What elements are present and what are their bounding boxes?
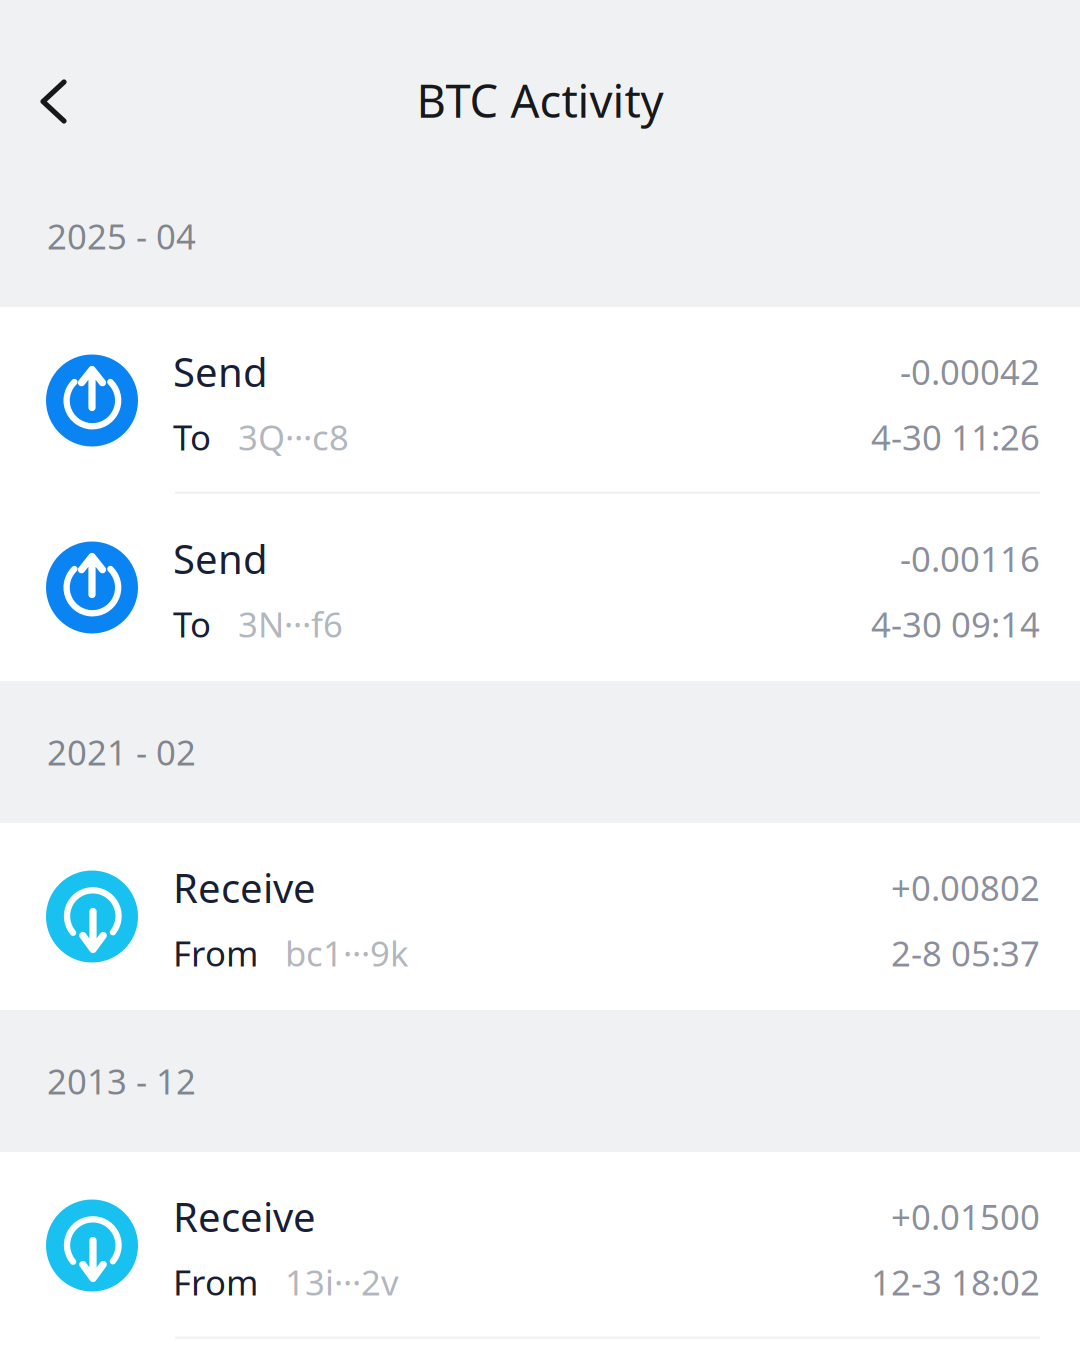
- staticText: +0.00802: [891, 864, 1040, 910]
- button[interactable]: Receive: [0, 823, 1080, 1010]
- staticText: 2025 - 04: [47, 213, 196, 259]
- button[interactable]: Send: [0, 494, 1080, 681]
- button[interactable]: Back: [18, 64, 106, 138]
- staticText: -0.00042: [900, 348, 1040, 394]
- staticText: To: [173, 414, 211, 460]
- button[interactable]: Send: [0, 307, 1080, 494]
- staticText: 3N···f6: [238, 601, 343, 647]
- button[interactable]: Receive: [0, 1152, 1080, 1339]
- staticText: BTC Activity: [416, 70, 663, 130]
- staticText: -0.00116: [900, 535, 1040, 581]
- staticText: 12-3 18:02: [871, 1259, 1040, 1305]
- staticText: 2-8 05:37: [891, 930, 1040, 976]
- staticText: 4-30 11:26: [871, 414, 1040, 460]
- staticText: bc1···9k: [285, 930, 409, 976]
- staticText: 2021 - 02: [47, 729, 196, 775]
- staticText: Send: [173, 345, 268, 398]
- staticText: Send: [173, 532, 268, 585]
- staticText: Receive: [173, 861, 316, 914]
- staticText: 3Q···c8: [238, 414, 349, 460]
- staticText: From: [173, 930, 258, 976]
- staticText: 2013 - 12: [47, 1058, 196, 1104]
- staticText: 4-30 09:14: [871, 601, 1040, 647]
- staticText: +0.01500: [891, 1193, 1040, 1239]
- staticText: 13i···2v: [285, 1259, 399, 1305]
- staticText: Receive: [173, 1190, 316, 1243]
- staticText: To: [173, 601, 211, 647]
- staticText: From: [173, 1259, 258, 1305]
